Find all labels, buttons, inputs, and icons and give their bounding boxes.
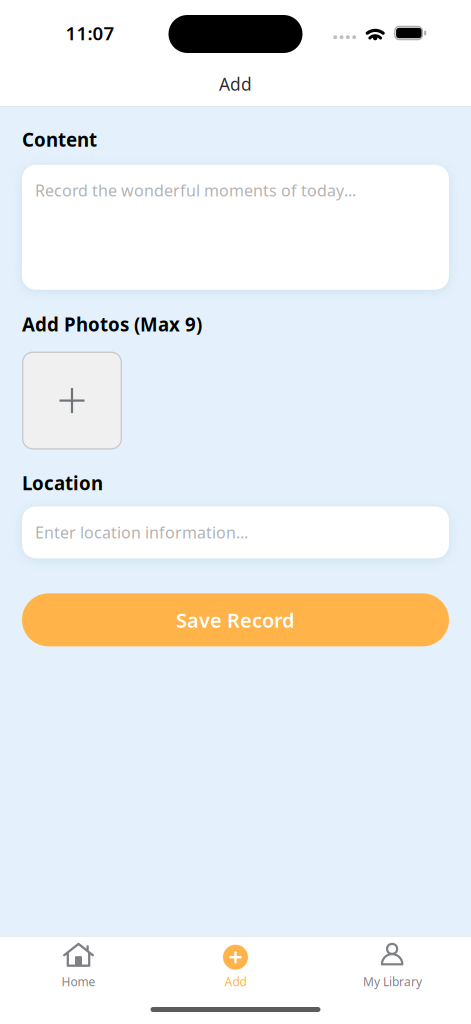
button[interactable]: Enter location information...	[22, 506, 449, 558]
button[interactable]: Save Record	[22, 593, 449, 646]
staticText: Location	[22, 471, 103, 495]
staticText: My Library	[363, 974, 422, 990]
staticText: 11:07	[65, 21, 114, 45]
staticText: Add Photos (Max 9)	[22, 312, 202, 337]
staticText: Add	[219, 72, 252, 95]
button[interactable]: Home	[0, 937, 157, 990]
button[interactable]: Add	[157, 937, 314, 990]
button[interactable]: Add Photo	[22, 352, 122, 450]
staticText: Content	[22, 127, 97, 152]
staticText: Home	[61, 974, 95, 990]
button[interactable]: My Library	[314, 937, 471, 990]
button[interactable]: Record the wonderful moments of today...	[22, 165, 449, 290]
staticText: Enter location information...	[35, 522, 248, 543]
staticText: Save Record	[176, 607, 295, 633]
staticText: Add	[224, 974, 246, 990]
staticText: Record the wonderful moments of today...	[35, 180, 356, 201]
